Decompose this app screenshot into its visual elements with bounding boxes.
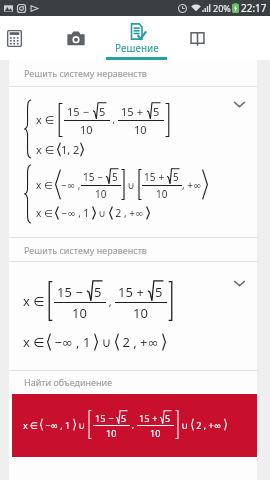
button[interactable]: Решение [106, 16, 167, 60]
staticText: 15 [118, 283, 133, 301]
staticText: ∪ [125, 178, 138, 192]
staticText: Найти объединение [24, 376, 113, 388]
staticText: 15 [139, 412, 150, 424]
staticText: − [80, 104, 93, 119]
staticText: Решение [115, 41, 159, 55]
staticText: 2 , +∞ [119, 333, 162, 351]
staticText: −∞ , 1 [51, 333, 94, 351]
staticText: 15 [83, 170, 95, 184]
staticText: x ∈ [23, 292, 45, 310]
staticText: 5 [121, 412, 127, 424]
staticText: − [106, 412, 116, 424]
staticText: 10 [80, 122, 93, 137]
staticText: 5 [112, 170, 118, 184]
staticText: − [72, 283, 87, 301]
staticText: x ∈ [36, 206, 53, 220]
staticText: 10 [95, 187, 107, 201]
staticText: 5 [94, 283, 102, 301]
staticText: 20% [213, 2, 231, 14]
staticText: 10 [150, 427, 161, 439]
staticText: 5 [99, 104, 106, 119]
staticText: + [150, 412, 160, 424]
staticText: 15 [57, 283, 72, 301]
staticText: ∪ [98, 333, 115, 351]
staticText: x ∈ [23, 333, 45, 351]
button[interactable]: Expand [227, 271, 251, 295]
staticText: 15 [67, 104, 80, 119]
staticText: Решить систему неравенств [24, 244, 147, 256]
staticText: + [134, 104, 147, 119]
staticText: + [156, 170, 167, 184]
staticText: −∞ , 1 [43, 419, 73, 431]
staticText: 15 [144, 170, 156, 184]
staticText: 22:17 [241, 1, 267, 15]
staticText: 5 [153, 104, 160, 119]
staticText: x ∈ [36, 112, 55, 127]
staticText: 10 [156, 187, 168, 201]
staticText: + [133, 283, 148, 301]
staticText: ∪ [96, 206, 109, 220]
staticText: 2 , +∞ [194, 419, 224, 431]
staticText: 10 [134, 122, 147, 137]
staticText: 2 , +∞ [113, 206, 146, 220]
staticText: 5 [165, 412, 171, 424]
staticText: 10 [72, 304, 87, 322]
button[interactable]: x ∈ [12, 394, 257, 457]
staticText: 10 [106, 427, 117, 439]
staticText: −∞ , 1 [59, 206, 92, 220]
staticText: ∪ [76, 419, 88, 431]
staticText: , [106, 294, 115, 309]
staticText: 5 [155, 283, 163, 301]
button[interactable]: Calculator [0, 16, 45, 60]
staticText: x ∈ [36, 142, 55, 157]
staticText: Решить систему неравенств [24, 67, 147, 79]
staticText: 5 [173, 170, 179, 184]
button[interactable]: Expand [227, 92, 251, 116]
button[interactable]: Book [167, 16, 228, 60]
button[interactable]: x ∈ [9, 262, 257, 370]
staticText: x ∈ [36, 178, 53, 192]
staticText: , +∞ [182, 178, 202, 192]
staticText: 15 [95, 412, 106, 424]
staticText: ∪ [179, 419, 191, 431]
staticText: , [110, 113, 118, 126]
staticText: , [130, 420, 137, 430]
staticText: 1, 2 [61, 142, 80, 157]
staticText: − [95, 170, 106, 184]
staticText: 15 [121, 104, 134, 119]
button[interactable]: x ∈ [9, 87, 257, 237]
staticText: 10 [133, 304, 148, 322]
staticText: −∞ , [61, 178, 81, 192]
staticText: x ∈ [23, 419, 38, 431]
button[interactable]: Camera [45, 16, 106, 60]
